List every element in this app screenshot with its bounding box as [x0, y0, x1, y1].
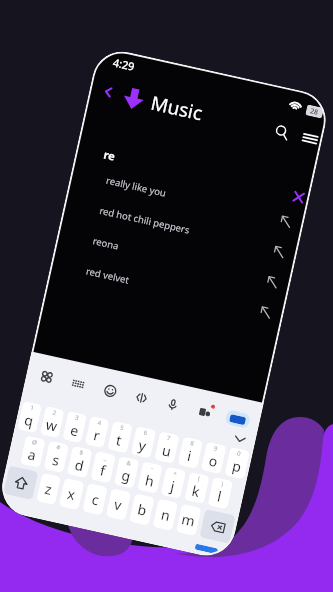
staticText: &: [126, 459, 132, 468]
button[interactable]: Collapse keyboard: [222, 428, 257, 449]
staticText: p: [231, 456, 243, 476]
staticText: b: [136, 499, 149, 520]
staticText: 2: [52, 409, 57, 417]
button[interactable]: n: [152, 498, 178, 531]
button[interactable]: Clear: [288, 186, 309, 207]
staticText: y: [137, 435, 149, 455]
button[interactable]: z: [36, 473, 61, 505]
staticText: 1: [29, 404, 35, 412]
staticText: re: [102, 147, 117, 164]
button[interactable]: Backspace: [199, 509, 236, 544]
staticText: red velvet: [85, 264, 131, 287]
button[interactable]: b: [129, 493, 155, 526]
button[interactable]: really like you: [67, 161, 306, 243]
button[interactable]: 1: [17, 401, 42, 433]
staticText: reona: [91, 234, 121, 253]
staticText: g: [120, 465, 133, 486]
button[interactable]: 5: [107, 421, 133, 453]
staticText: o: [207, 451, 220, 471]
staticText: t: [114, 430, 124, 450]
staticText: v: [112, 494, 124, 515]
staticText: red hot chili peppers: [98, 204, 191, 237]
staticText: 8: [190, 439, 195, 448]
staticText: h: [143, 470, 156, 491]
staticText: f: [98, 460, 107, 480]
button[interactable]: Apps: [34, 364, 58, 388]
button[interactable]: 9: [201, 442, 227, 474]
button[interactable]: Menu: [297, 126, 323, 152]
staticText: really like you: [105, 174, 167, 200]
staticText: q: [23, 410, 35, 430]
staticText: 6: [143, 429, 148, 437]
staticText: l: [216, 486, 224, 506]
staticText: $: [79, 448, 84, 457]
button[interactable]: Settings: [193, 399, 217, 423]
staticText: n: [159, 505, 172, 525]
staticText: r: [92, 425, 102, 445]
staticText: 5: [119, 423, 125, 432]
button[interactable]: 7: [154, 431, 180, 464]
staticText: _: [103, 454, 108, 462]
button[interactable]: GIF keyboard: [66, 371, 90, 395]
staticText: x: [66, 484, 77, 504]
staticText: (: [197, 475, 201, 483]
button[interactable]: m: [176, 504, 202, 536]
button[interactable]: Shift: [3, 465, 39, 500]
button[interactable]: 6: [131, 426, 156, 459]
staticText: #: [55, 443, 61, 452]
button[interactable]: (: [184, 472, 210, 504]
button[interactable]: Back: [95, 79, 121, 105]
button[interactable]: $: [67, 446, 93, 478]
staticText: e: [68, 420, 80, 440]
button[interactable]: reona: [54, 222, 293, 303]
staticText: 4: [97, 419, 102, 427]
button[interactable]: Gboard: [224, 409, 251, 429]
staticText: 3: [74, 414, 80, 422]
button[interactable]: _: [90, 451, 116, 483]
staticText: j: [169, 476, 177, 495]
button[interactable]: red hot chili peppers: [60, 191, 299, 273]
staticText: k: [190, 481, 202, 501]
button[interactable]: c: [82, 483, 108, 515]
button[interactable]: +: [160, 466, 186, 499]
staticText: 4:29: [111, 54, 136, 74]
staticText: 28: [309, 106, 320, 118]
button[interactable]: &: [114, 456, 139, 489]
staticText: d: [73, 455, 86, 475]
staticText: m: [180, 509, 198, 531]
button[interactable]: Voice input: [160, 392, 184, 416]
staticText: i: [186, 446, 194, 465]
staticText: z: [43, 479, 54, 499]
staticText: a: [26, 444, 38, 465]
button[interactable]: 8: [177, 436, 203, 469]
button[interactable]: 3: [62, 411, 87, 443]
button[interactable]: Search: [269, 119, 295, 145]
button[interactable]: -: [137, 461, 163, 494]
staticText: -: [150, 464, 154, 472]
button[interactable]: ): [207, 477, 233, 509]
staticText: 9: [213, 444, 219, 453]
button[interactable]: #: [43, 440, 69, 473]
staticText: +: [173, 469, 178, 478]
button[interactable]: 4: [85, 416, 109, 448]
staticText: @: [31, 438, 39, 447]
button[interactable]: Emoji: [98, 378, 122, 402]
staticText: 7: [166, 434, 172, 443]
staticText: c: [90, 489, 101, 509]
button[interactable]: v: [105, 488, 131, 521]
button[interactable]: x: [59, 478, 84, 510]
staticText: Music: [148, 90, 206, 127]
staticText: s: [51, 450, 61, 470]
button[interactable]: 0: [224, 447, 250, 479]
button[interactable]: red velvet: [47, 252, 286, 334]
button[interactable]: @: [20, 435, 46, 468]
staticText: u: [160, 440, 173, 461]
staticText: ): [220, 480, 224, 488]
button[interactable]: Clipboard: [129, 385, 153, 409]
button[interactable]: 2: [40, 406, 65, 438]
staticText: 0: [236, 449, 242, 458]
staticText: w: [44, 415, 60, 436]
